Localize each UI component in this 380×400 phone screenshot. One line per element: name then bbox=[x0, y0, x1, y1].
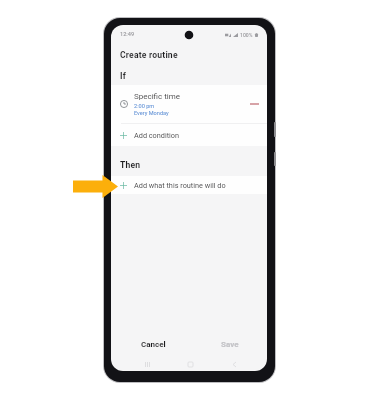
button[interactable]: Add what this routine will do bbox=[111, 176, 267, 194]
staticText: Add condition bbox=[134, 131, 180, 140]
other: Power button bbox=[274, 152, 276, 166]
button[interactable]: Add condition bbox=[111, 124, 267, 146]
button[interactable]: Recent apps bbox=[138, 356, 156, 371]
staticText: Specific time bbox=[134, 92, 181, 101]
button[interactable]: Cancel bbox=[128, 336, 178, 353]
button[interactable]: Home bbox=[181, 356, 199, 371]
staticText: Then bbox=[120, 160, 141, 170]
staticText: Create routine bbox=[120, 50, 178, 60]
staticText: Every Monday bbox=[134, 110, 169, 117]
staticText: Save bbox=[221, 340, 239, 349]
staticText: 2:00 pm bbox=[134, 103, 155, 110]
staticText: 12:49 bbox=[120, 31, 135, 38]
button[interactable]: Save bbox=[205, 336, 255, 353]
button[interactable]: Specific time bbox=[111, 85, 267, 123]
button[interactable]: Remove condition bbox=[248, 98, 260, 110]
staticText: Cancel bbox=[141, 340, 166, 349]
other: Volume button bbox=[274, 122, 276, 137]
staticText: Add what this routine will do bbox=[134, 181, 226, 190]
staticText: If bbox=[120, 71, 126, 81]
staticText: 100% bbox=[240, 32, 253, 38]
